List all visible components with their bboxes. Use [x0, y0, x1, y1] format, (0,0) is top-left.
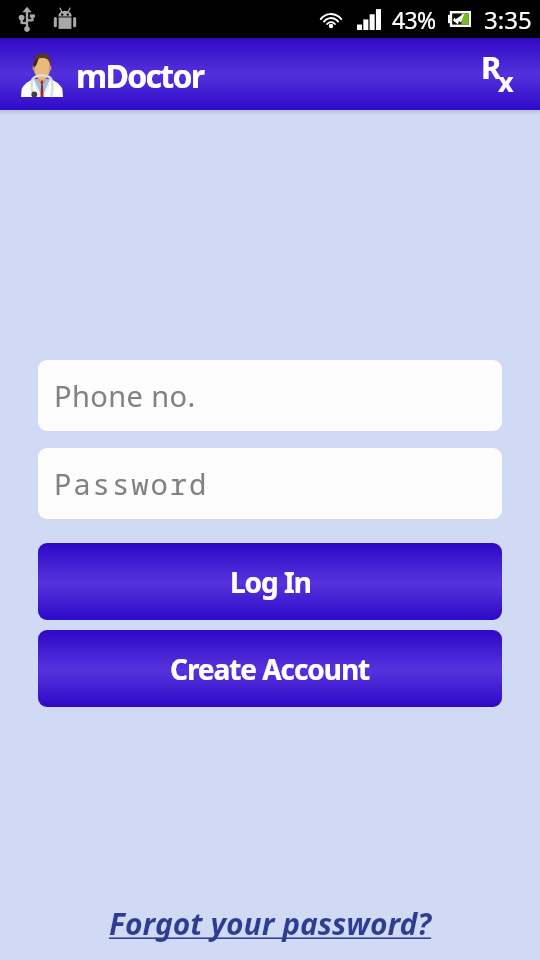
button[interactable]: Prescriptions: [474, 52, 518, 96]
staticText: Password: [54, 464, 209, 503]
staticText: 43%: [392, 4, 436, 35]
staticText: x: [498, 63, 514, 100]
staticText: mDoctor: [76, 54, 204, 98]
staticText: Create Account: [170, 650, 370, 688]
staticText: R: [481, 46, 502, 88]
staticText: Forgot your password?: [109, 903, 432, 944]
staticText: Log In: [230, 563, 311, 601]
button[interactable]: Forgot your password?: [109, 903, 432, 944]
staticText: 3:35: [484, 3, 532, 36]
button[interactable]: Log In: [38, 543, 502, 620]
button[interactable]: Create Account: [38, 630, 502, 707]
button[interactable]: Phone no.: [38, 360, 502, 431]
button[interactable]: Password: [38, 448, 502, 519]
staticText: Phone no.: [54, 376, 196, 415]
